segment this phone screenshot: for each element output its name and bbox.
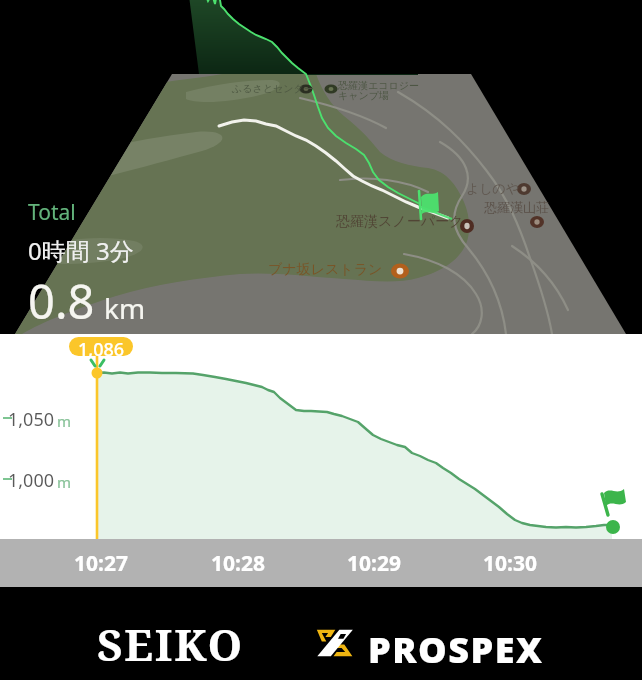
staticText: PROSPEX (368, 625, 544, 674)
staticText: 1,000 (8, 468, 55, 493)
staticText: 1,086 (78, 337, 125, 356)
staticText: 10:29 (347, 549, 401, 578)
button[interactable]: 恐羅漢スノーパーク (0, 0, 642, 334)
staticText: よしのや (466, 180, 520, 196)
staticText: 恐羅漢エコロジー キャンプ場 (338, 79, 419, 102)
staticText: ブナ坂レストラン (268, 261, 383, 279)
staticText: SEIKO (97, 614, 244, 674)
staticText: 恐羅漢スノーパーク (336, 213, 464, 231)
staticText: 0.8 (28, 269, 95, 333)
staticText: 10:27 (74, 549, 128, 578)
staticText: 0時間 3分 (28, 234, 134, 267)
staticText: m (57, 411, 72, 431)
staticText: Total (28, 198, 76, 227)
staticText: ふるさとセンター (232, 82, 314, 95)
staticText: 1,050 (8, 407, 55, 432)
staticText: m (57, 472, 72, 492)
staticText: 10:28 (211, 549, 265, 578)
staticText: km (104, 289, 146, 327)
button[interactable]: 1,086 (69, 337, 133, 356)
button[interactable] (0, 334, 642, 587)
staticText: 10:30 (483, 549, 537, 578)
staticText: 恐羅漢山荘 (484, 199, 549, 215)
